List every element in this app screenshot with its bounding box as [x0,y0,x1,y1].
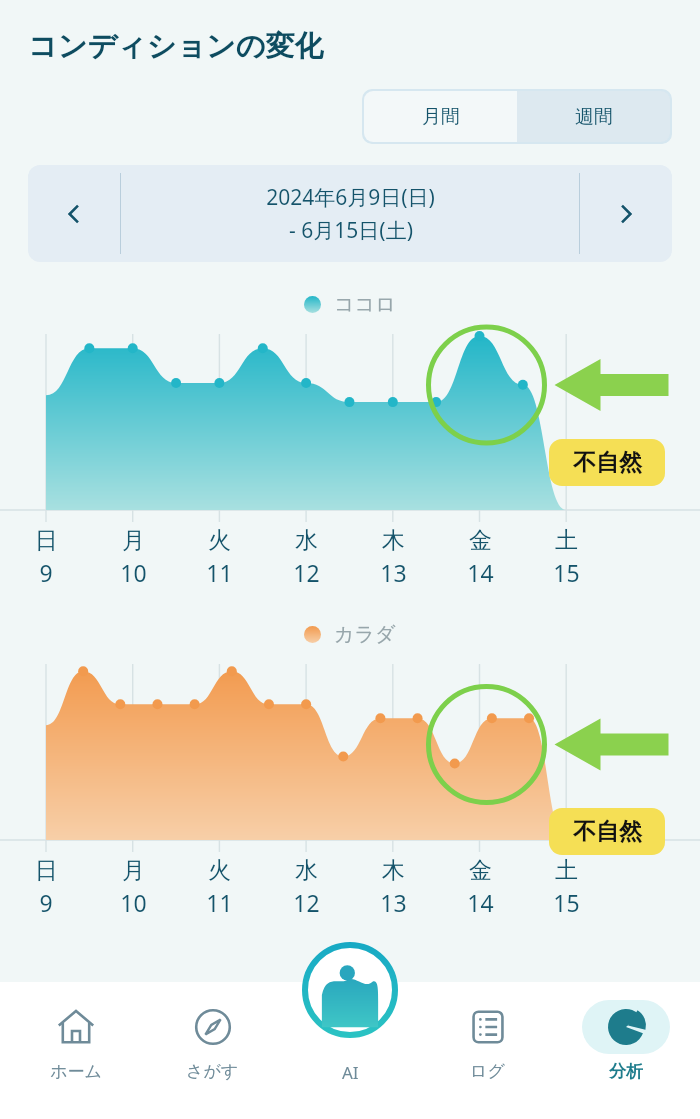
staticText: 15 [553,557,580,588]
staticText: - 6月15日(土) [289,216,413,245]
button[interactable]: 分析 [563,1000,688,1082]
staticText: ホーム [50,1061,102,1082]
staticText: 週間 [575,105,613,129]
staticText: 10 [120,557,147,588]
staticText: 分析 [609,1061,643,1082]
button[interactable]: 前の週 [28,165,120,262]
staticText: 火 [208,856,231,885]
staticText: ログ [470,1061,505,1082]
staticText: 木 [382,526,405,555]
staticText: 11 [206,557,233,588]
staticText: 日 [35,856,58,885]
staticText: ココロ [334,292,396,317]
staticText: 月 [122,856,145,885]
staticText: AI [342,1061,359,1084]
button[interactable]: 月間 [364,91,517,142]
staticText: コンディションの変化 [28,28,324,65]
staticText: 14 [467,887,494,918]
staticText: 月 [122,526,145,555]
staticText: さがす [186,1061,239,1082]
staticText: 13 [380,557,407,588]
staticText: 木 [382,856,405,885]
staticText: 金 [469,526,492,555]
staticText: 11 [206,887,233,918]
staticText: 火 [208,526,231,555]
staticText: カラダ [334,622,396,647]
staticText: 13 [380,887,407,918]
staticText: 9 [39,557,53,588]
staticText: 9 [39,887,53,918]
button[interactable]: さがす [150,1000,275,1082]
button[interactable]: AI [288,1000,413,1084]
staticText: 土 [555,526,578,555]
staticText: 2024年6月9日(日) [266,183,435,212]
staticText: 日 [35,526,58,555]
staticText: 12 [293,887,320,918]
button[interactable]: 週間 [517,91,670,142]
staticText: 水 [295,526,318,555]
staticText: 14 [467,557,494,588]
button[interactable]: AI [302,942,398,1038]
button[interactable]: ホーム [13,1000,138,1082]
staticText: 不自然 [573,448,642,477]
staticText: 15 [553,887,580,918]
staticText: 10 [120,887,147,918]
staticText: 水 [295,856,318,885]
staticText: 不自然 [573,817,642,846]
staticText: 土 [555,856,578,885]
button[interactable]: 次の週 [580,165,672,262]
staticText: 金 [469,856,492,885]
button[interactable]: ログ [425,1000,550,1082]
staticText: 月間 [422,105,460,129]
staticText: 12 [293,557,320,588]
button[interactable]: 2024年6月9日(日) [121,165,579,262]
